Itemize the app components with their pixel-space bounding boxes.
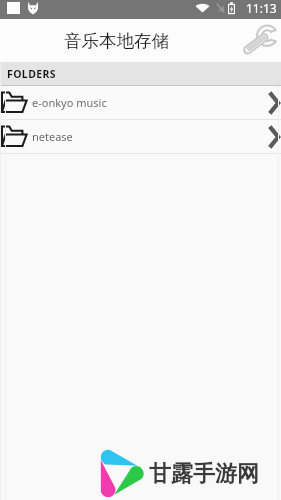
staticText: 音乐本地存储 xyxy=(64,30,169,52)
button[interactable]: Settings xyxy=(238,20,280,62)
staticText: FOLDERS xyxy=(7,67,56,81)
button[interactable]: e-onkyo music xyxy=(0,86,281,119)
staticText: 11:13 xyxy=(246,0,277,16)
staticText: 甘露手游网 xyxy=(149,460,259,488)
button[interactable]: netease xyxy=(0,120,281,153)
staticText: netease xyxy=(32,129,73,144)
staticText: e-onkyo music xyxy=(32,95,107,110)
